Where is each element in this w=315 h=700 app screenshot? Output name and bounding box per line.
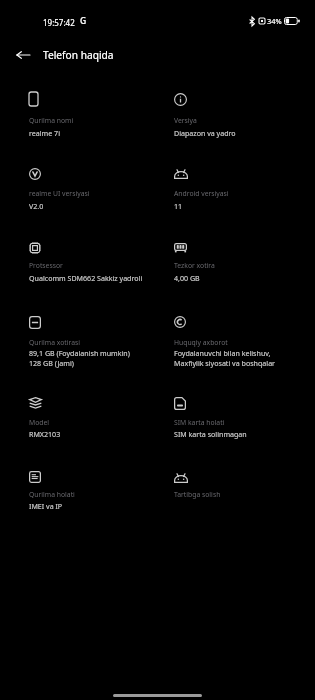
staticText: RMX2103 [29,429,61,439]
staticText: IMEI va IP [29,501,63,511]
staticText: SIM karta holati [174,418,225,427]
staticText: realme 7i [29,128,60,138]
button[interactable]: Back [12,44,34,66]
button[interactable] [22,391,160,445]
staticText: Protsessor [29,261,63,270]
staticText: Tartibga solish [174,490,221,499]
staticText: Diapazon va yadro [174,128,236,138]
staticText: realme UI versiyasi [29,189,90,198]
staticText: Model [29,418,50,427]
staticText: 128 GB (Jami) [29,358,74,368]
staticText: G [80,15,87,27]
staticText: Huquqiy axborot [174,338,228,347]
staticText: 19:57:42 [43,17,75,28]
staticText: Qurilma xotirasi [29,338,81,347]
button[interactable] [167,163,305,217]
staticText: Android versiyasi [174,189,229,198]
staticText: Qurilma nomi [29,116,74,125]
button[interactable] [22,235,160,288]
button[interactable] [22,310,160,376]
staticText: SIM karta solinmagan [174,429,247,439]
button[interactable] [167,86,305,143]
staticText: Tezkor xotira [174,261,215,270]
staticText: Telefon haqida [43,48,114,62]
staticText: 89,1 GB (Foydalanish mumkin) [29,348,130,358]
staticText: 4,00 GB [174,273,200,283]
button[interactable] [167,465,305,505]
staticText: 11 [174,201,183,211]
button[interactable] [22,465,160,517]
button[interactable] [22,163,160,217]
staticText: 34% [267,16,282,26]
staticText: Foydalanuvchi bilan kelishuv, [174,348,271,358]
button[interactable] [22,86,160,143]
staticText: Versiya [174,116,197,125]
staticText: V2.0 [29,201,44,211]
button[interactable] [167,235,305,288]
staticText: Maxfiylik siyosati va boshqalar [174,358,276,368]
staticText: Qurilma holati [29,490,75,499]
button[interactable] [167,391,305,445]
button[interactable] [167,310,305,376]
staticText: Qualcomm SDM662 Sakkiz yadroli [29,273,143,283]
